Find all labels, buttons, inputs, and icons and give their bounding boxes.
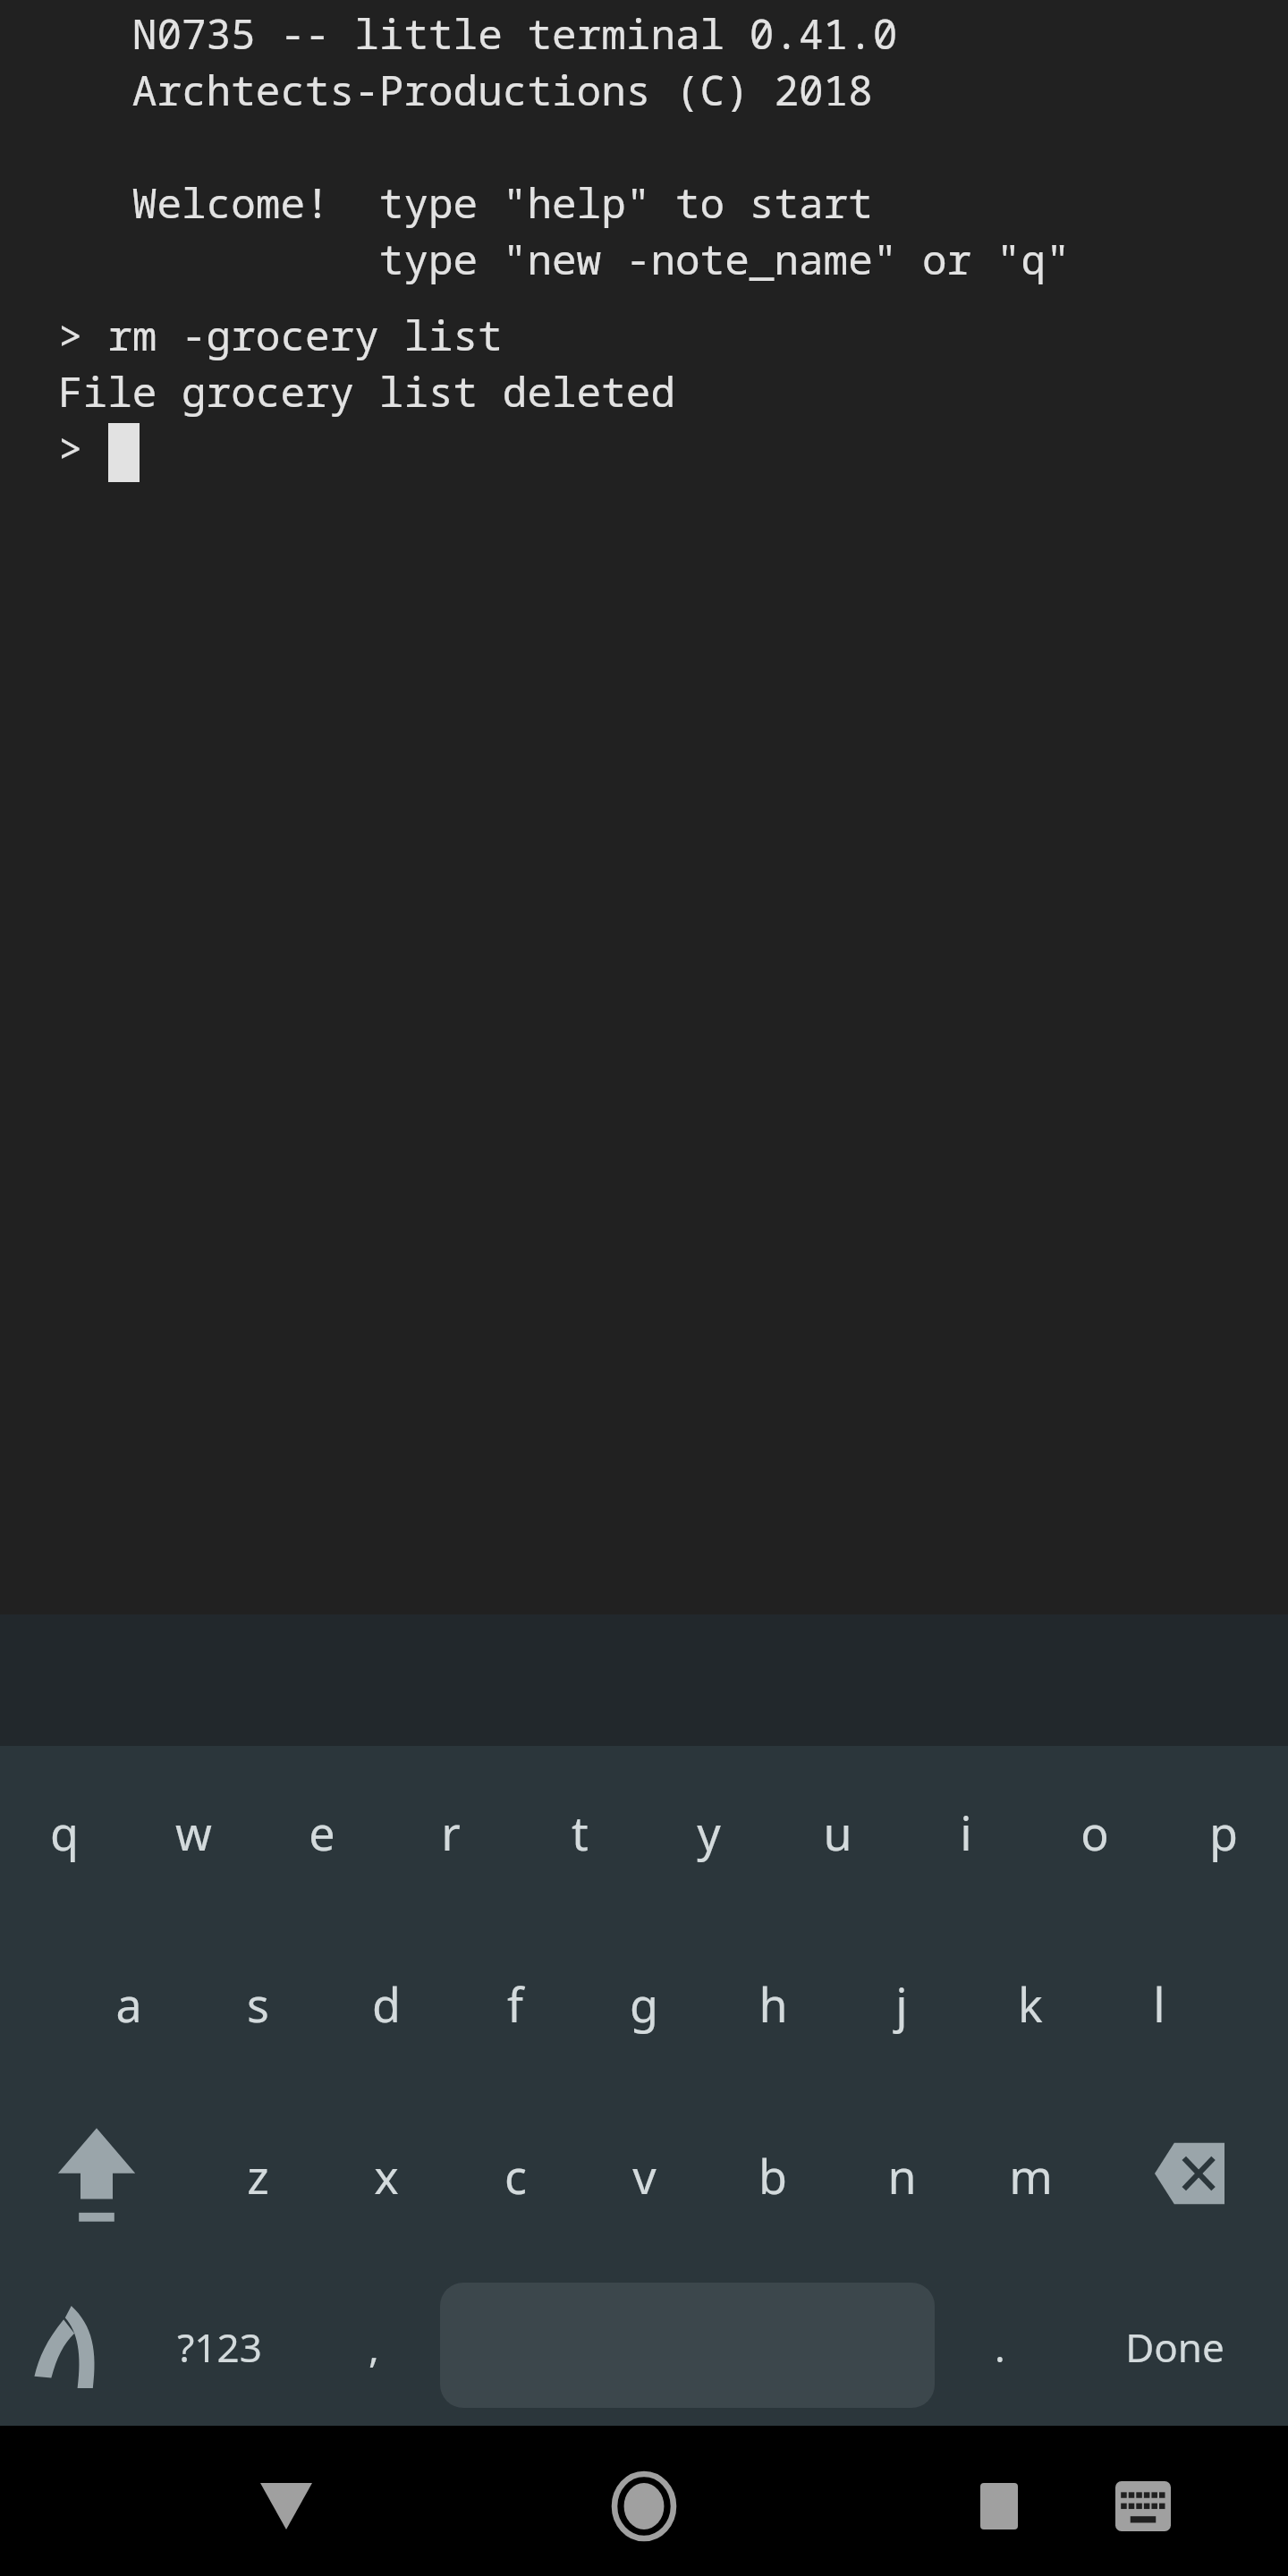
button[interactable]: c bbox=[451, 2090, 580, 2260]
button[interactable]: , bbox=[309, 2262, 438, 2432]
button[interactable]: w bbox=[129, 1747, 258, 1917]
staticText: , bbox=[369, 2320, 379, 2374]
button[interactable]: x bbox=[322, 2090, 451, 2260]
button[interactable]: u bbox=[773, 1747, 902, 1917]
staticText: b bbox=[758, 2144, 787, 2207]
staticText: a bbox=[115, 1972, 142, 2036]
button[interactable]: d bbox=[322, 1919, 451, 2089]
button[interactable]: s bbox=[193, 1919, 322, 2089]
button[interactable]: N0735 -- little terminal 0.41.0 bbox=[0, 0, 1288, 1614]
button[interactable]: o bbox=[1030, 1747, 1159, 1917]
button[interactable]: l bbox=[1095, 1919, 1224, 2089]
staticText: ?123 bbox=[177, 2320, 262, 2374]
button[interactable]: Recent apps bbox=[928, 2439, 1071, 2573]
staticText: N0735 -- little terminal 0.41.0 bbox=[58, 5, 898, 62]
staticText: type "new -note_name" or "q" bbox=[58, 231, 1071, 287]
staticText: u bbox=[823, 1801, 852, 1864]
button[interactable]: m bbox=[966, 2090, 1095, 2260]
button[interactable]: p bbox=[1159, 1747, 1288, 1917]
button[interactable]: Home bbox=[572, 2439, 716, 2573]
button[interactable]: b bbox=[708, 2090, 837, 2260]
staticText: n bbox=[887, 2144, 917, 2207]
staticText: w bbox=[175, 1801, 212, 1864]
staticText: f bbox=[507, 1972, 523, 2036]
button[interactable]: v bbox=[580, 2090, 708, 2260]
staticText: p bbox=[1209, 1801, 1238, 1864]
button[interactable]: h bbox=[708, 1919, 837, 2089]
button[interactable]: r bbox=[386, 1747, 515, 1917]
staticText: e bbox=[309, 1801, 335, 1864]
staticText: o bbox=[1080, 1801, 1109, 1864]
button[interactable]: . bbox=[936, 2262, 1064, 2432]
button[interactable]: a bbox=[64, 1919, 193, 2089]
staticText: v bbox=[632, 2144, 657, 2207]
button[interactable]: Switch input method bbox=[0, 2262, 141, 2432]
staticText: x bbox=[374, 2144, 399, 2207]
button[interactable]: j bbox=[837, 1919, 966, 2089]
button[interactable]: i bbox=[902, 1747, 1030, 1917]
staticText: Done bbox=[1125, 2320, 1224, 2374]
button[interactable]: ?123 bbox=[155, 2262, 284, 2432]
staticText: t bbox=[572, 1801, 589, 1864]
button[interactable]: q bbox=[0, 1747, 129, 1917]
staticText: Archtects-Productions (C) 2018 bbox=[58, 62, 873, 118]
button[interactable]: f bbox=[451, 1919, 580, 2089]
button[interactable]: z bbox=[193, 2090, 322, 2260]
staticText: File grocery list deleted bbox=[58, 363, 675, 419]
staticText: l bbox=[1153, 1972, 1165, 2036]
staticText: r bbox=[441, 1801, 461, 1864]
button[interactable]: g bbox=[580, 1919, 708, 2089]
staticText: g bbox=[630, 1972, 658, 2036]
staticText: h bbox=[758, 1972, 788, 2036]
button[interactable]: Hide keyboard bbox=[1072, 2439, 1215, 2573]
staticText: q bbox=[50, 1801, 79, 1864]
staticText: Welcome! type "help" to start bbox=[58, 174, 873, 231]
staticText: > bbox=[58, 419, 108, 476]
button[interactable]: y bbox=[644, 1747, 773, 1917]
button[interactable]: Backspace bbox=[1118, 2089, 1261, 2258]
button[interactable]: k bbox=[966, 1919, 1095, 2089]
staticText: z bbox=[247, 2144, 269, 2207]
button[interactable]: Back bbox=[215, 2439, 358, 2573]
button[interactable]: e bbox=[258, 1747, 386, 1917]
staticText: i bbox=[960, 1801, 972, 1864]
staticText: . bbox=[995, 2320, 1005, 2374]
button[interactable]: Done bbox=[1110, 2262, 1239, 2432]
button[interactable]: n bbox=[837, 2090, 966, 2260]
staticText: y bbox=[697, 1801, 721, 1864]
staticText: d bbox=[372, 1972, 401, 2036]
staticText: k bbox=[1018, 1972, 1043, 2036]
button[interactable]: Shift bbox=[25, 2090, 168, 2260]
staticText: m bbox=[1009, 2144, 1053, 2207]
staticText: j bbox=[895, 1972, 908, 2036]
button[interactable]: t bbox=[515, 1747, 644, 1917]
staticText: c bbox=[504, 2144, 527, 2207]
staticText: s bbox=[247, 1972, 269, 2036]
staticText: > rm -grocery list bbox=[58, 307, 503, 363]
